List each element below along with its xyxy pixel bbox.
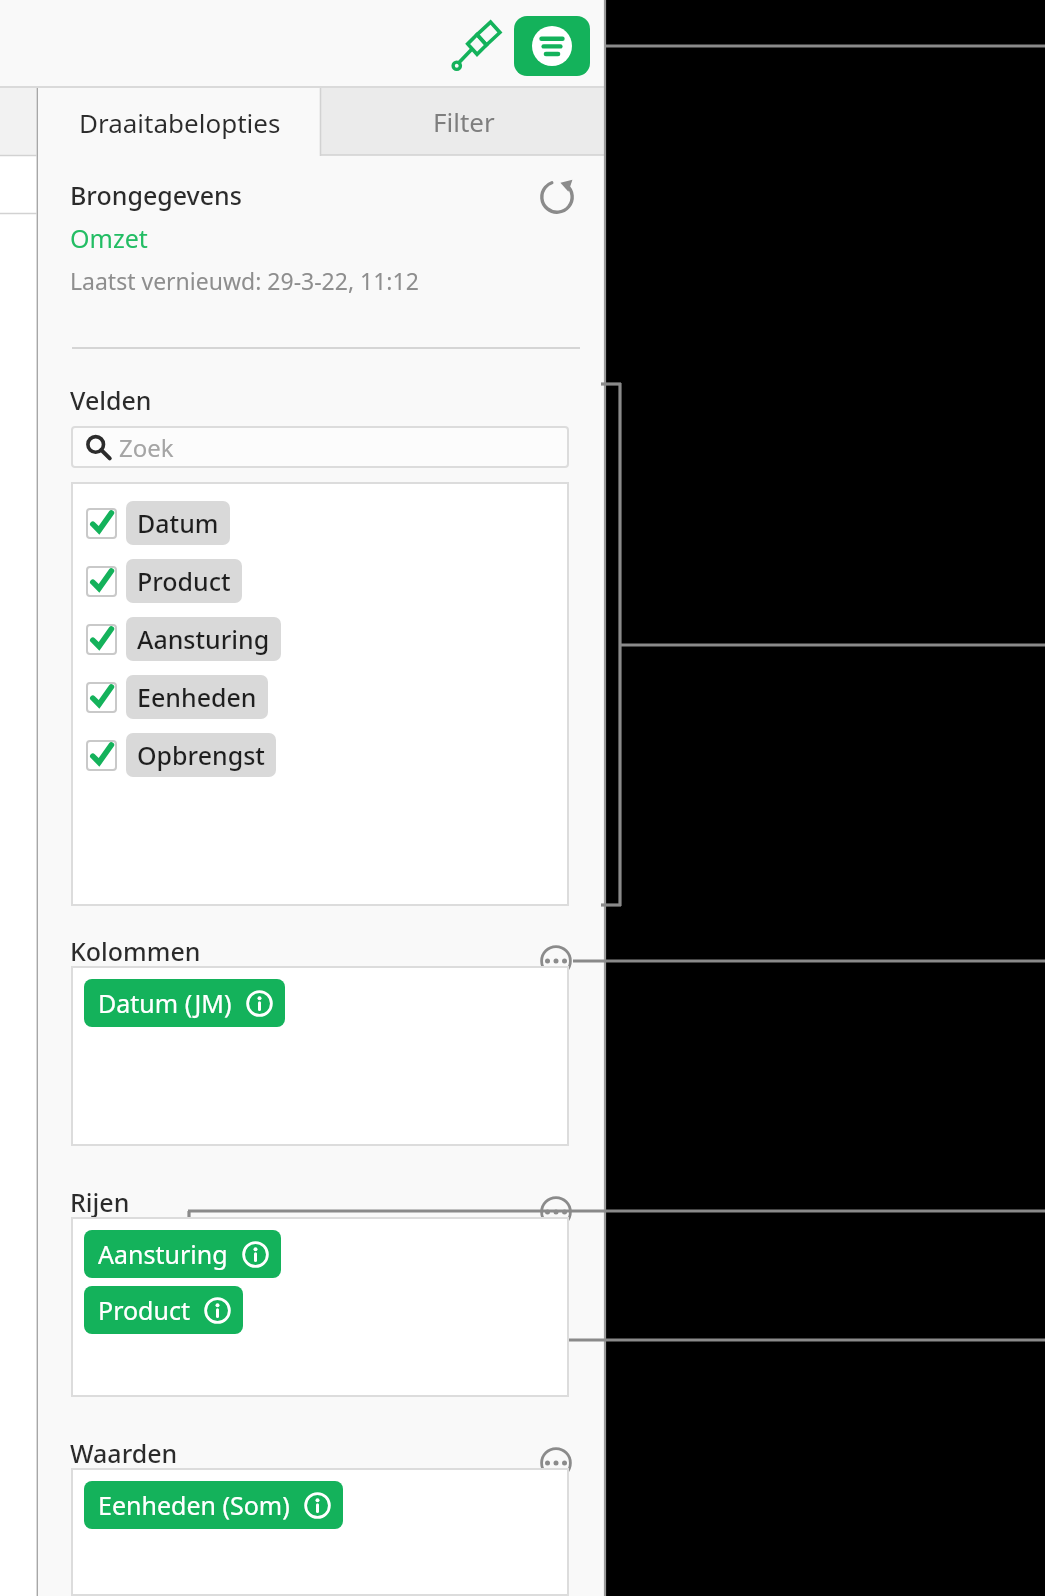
button[interactable]: Rijen field options (538, 1194, 574, 1230)
button[interactable]: Draaitabelopties (38, 88, 321, 156)
staticText: Filter (433, 104, 495, 139)
button[interactable]: Aansturing (98, 1237, 269, 1271)
button[interactable]: Zoek (71, 426, 569, 468)
button[interactable]: Datum (86, 494, 230, 552)
button[interactable]: Refresh source data (534, 173, 580, 219)
button[interactable]: Eenheden (86, 668, 268, 726)
button[interactable]: Waarden field options (538, 1445, 574, 1481)
button[interactable]: Datum (JM) (98, 986, 273, 1020)
staticText: Brongegevens (70, 178, 242, 212)
button[interactable]: Omzet (70, 221, 148, 255)
staticText: Aansturing (137, 622, 270, 656)
staticText: Zoek (119, 431, 174, 464)
button[interactable]: Format (450, 20, 502, 72)
staticText: Draaitabelopties (79, 105, 281, 140)
button[interactable]: Aansturing (86, 610, 281, 668)
staticText: Aansturing (98, 1237, 228, 1271)
staticText: Rijen (70, 1185, 130, 1219)
staticText: Eenheden (137, 680, 257, 714)
button[interactable]: Filter (321, 88, 606, 155)
staticText: Product (137, 564, 231, 598)
staticText: Datum (JM) (98, 986, 232, 1020)
button[interactable]: Product (86, 552, 242, 610)
staticText: Kolommen (70, 934, 201, 968)
button[interactable]: Organize (514, 16, 590, 76)
staticText: Laatst vernieuwd: 29-3-22, 11:12 (70, 265, 419, 296)
button[interactable]: Kolommen field options (538, 943, 574, 979)
staticText: Datum (137, 506, 219, 540)
staticText: Waarden (70, 1436, 178, 1470)
button[interactable]: Opbrengst (86, 726, 276, 784)
button[interactable]: Product (98, 1293, 231, 1327)
staticText: Velden (70, 383, 152, 417)
button[interactable]: Eenheden (Som) (98, 1488, 331, 1522)
staticText: Product (98, 1293, 190, 1327)
staticText: Opbrengst (137, 738, 265, 772)
staticText: Eenheden (Som) (98, 1488, 290, 1522)
